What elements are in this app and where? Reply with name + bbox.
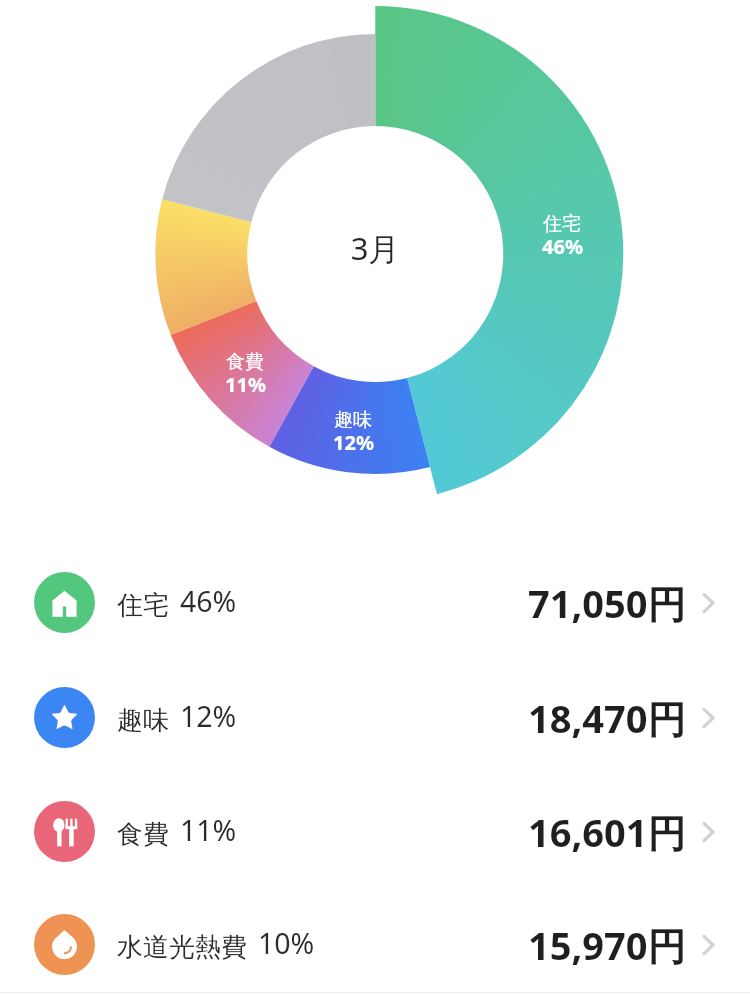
button[interactable]: 趣味 <box>0 660 750 775</box>
staticText: 3月 <box>315 227 435 269</box>
staticText: 11% <box>225 371 266 398</box>
staticText: 10% <box>258 924 315 963</box>
staticText: 食費 <box>226 350 264 374</box>
staticText: 趣味 <box>117 704 169 737</box>
staticText: 住宅 <box>117 589 169 622</box>
staticText: 水道光熱費 <box>117 931 247 964</box>
staticText: 15,970円 <box>528 919 686 971</box>
staticText: 46% <box>180 582 237 621</box>
staticText: 12% <box>180 697 237 736</box>
button[interactable]: 住宅 <box>0 545 750 660</box>
staticText: 71,050円 <box>528 577 686 629</box>
staticText: 趣味 <box>334 408 372 432</box>
staticText: 46% <box>542 233 583 260</box>
staticText: 住宅 <box>543 212 581 236</box>
staticText: 食費 <box>117 818 169 851</box>
staticText: 16,601円 <box>528 806 686 858</box>
staticText: 11% <box>180 811 237 850</box>
button[interactable]: 水道光熱費 <box>0 887 750 996</box>
button[interactable]: 食費 <box>0 774 750 889</box>
staticText: 12% <box>333 429 374 456</box>
staticText: 18,470円 <box>528 692 686 744</box>
